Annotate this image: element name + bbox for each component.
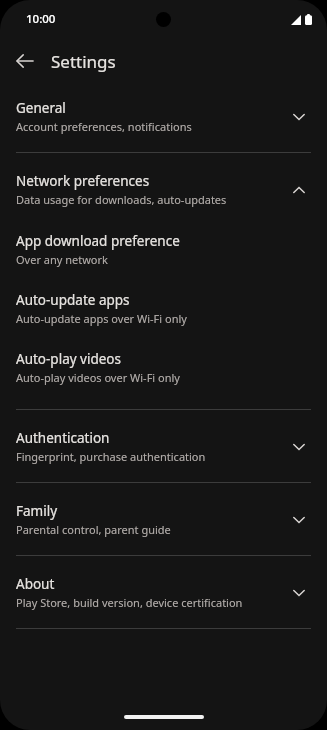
staticText: Authentication — [16, 429, 110, 447]
staticText: Parental control, parent guide — [16, 522, 171, 537]
other: Expand — [285, 579, 313, 607]
staticText: General — [16, 99, 66, 117]
button[interactable]: Network preferences — [0, 172, 327, 207]
button[interactable]: Authentication — [0, 429, 327, 464]
other: Collapse — [285, 176, 313, 204]
button[interactable]: Auto-play videos — [0, 350, 327, 385]
staticText: Account preferences, notifications — [16, 119, 192, 134]
staticText: Family — [16, 502, 58, 520]
button[interactable]: App download preference — [0, 232, 327, 267]
button[interactable]: General — [0, 99, 327, 134]
other: Expand — [285, 103, 313, 131]
staticText: Data usage for downloads, auto-updates — [16, 192, 227, 207]
staticText: Play Store, build version, device certif… — [16, 595, 243, 610]
staticText: Fingerprint, purchase authentication — [16, 449, 206, 464]
staticText: Auto-update apps over Wi-Fi only — [16, 311, 187, 326]
other: Expand — [285, 433, 313, 461]
staticText: Auto-play videos — [16, 350, 122, 368]
button[interactable]: About — [0, 575, 327, 610]
button[interactable]: Auto-update apps — [0, 291, 327, 326]
button[interactable]: Family — [0, 502, 327, 537]
staticText: Settings — [51, 50, 116, 73]
staticText: 10:00 — [26, 11, 56, 27]
staticText: About — [16, 575, 55, 593]
other: Expand — [285, 506, 313, 534]
staticText: Auto-update apps — [16, 291, 130, 309]
staticText: App download preference — [16, 232, 180, 250]
button[interactable]: Back — [7, 43, 43, 79]
staticText: Auto-play videos over Wi-Fi only — [16, 370, 180, 385]
staticText: Over any network — [16, 252, 108, 267]
staticText: Network preferences — [16, 172, 150, 190]
